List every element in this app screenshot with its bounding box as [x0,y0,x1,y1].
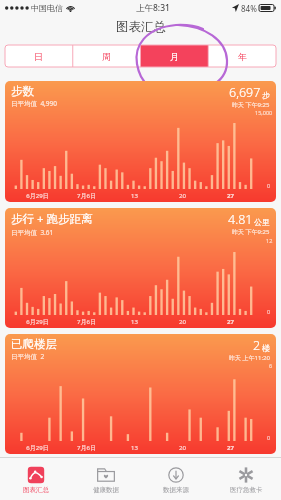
staticText: 日平均值 4,990 [11,99,57,108]
staticText: 中国电信 [31,3,63,13]
button[interactable]: 数据来源 [141,458,211,500]
staticText: 已爬楼层 [11,337,57,351]
staticText: 楼 [262,343,270,353]
button[interactable]: 步数 [5,81,276,202]
staticText: 0 [267,434,271,441]
staticText: 公里 [254,217,270,227]
staticText: 月 [170,51,179,62]
staticText: 0 [267,182,271,189]
staticText: 13 [131,192,138,200]
button[interactable]: 已爬楼层 [5,334,276,454]
button[interactable]: 步行 + 跑步距离 [5,208,276,328]
staticText: 医疗急救卡 [230,486,263,494]
staticText: 12 [266,237,273,244]
staticText: 昨天 下午9:25 [232,101,270,109]
staticText: 图表汇总 [23,486,49,494]
staticText: 昨天 上午11:20 [229,354,270,362]
button[interactable]: 图表汇总 [0,458,71,500]
staticText: 日平均值 2 [11,352,45,361]
button[interactable]: 周 [72,45,140,67]
button[interactable]: 健康数据 [71,458,141,500]
staticText: 7月6日 [77,318,96,326]
staticText: 数据来源 [163,486,189,494]
staticText: 步数 [11,84,34,98]
staticText: 13 [131,444,138,452]
button[interactable]: 年 [208,45,276,67]
button[interactable]: 医疗急救卡 [211,458,281,500]
staticText: 6月29日 [26,444,49,452]
staticText: 步 [262,90,270,100]
staticText: 6 [269,362,273,369]
staticText: 20 [179,444,186,452]
staticText: 13 [131,318,138,326]
staticText: 6月29日 [26,318,49,326]
staticText: 日平均值 3.61 [11,228,54,237]
staticText: 20 [179,192,186,200]
staticText: 27 [227,444,234,452]
staticText: 0 [267,308,271,315]
staticText: 昨天 下午9:25 [232,228,270,236]
button[interactable]: 月 [140,45,208,67]
staticText: 年 [238,51,247,62]
staticText: 84% [241,3,257,14]
staticText: 6月29日 [26,192,49,200]
staticText: 步行 + 跑步距离 [11,211,93,227]
staticText: 日 [34,51,43,62]
staticText: 4.81 [228,211,253,228]
staticText: 周 [102,51,111,62]
staticText: 20 [179,318,186,326]
staticText: 上午8:31 [136,2,170,14]
staticText: 6,697 [229,84,261,101]
staticText: 图表汇总 [116,19,166,35]
staticText: 27 [227,318,234,326]
staticText: 27 [227,192,234,200]
button[interactable]: 日 [5,45,72,67]
staticText: 2 [253,337,261,354]
staticText: 健康数据 [93,486,119,494]
staticText: 7月6日 [77,192,96,200]
staticText: 7月6日 [77,444,96,452]
staticText: 15,000 [255,109,273,116]
